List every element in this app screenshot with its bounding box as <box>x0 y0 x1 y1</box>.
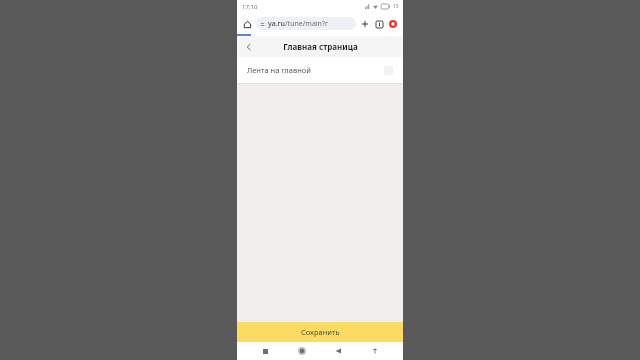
staticText: Главная страница <box>283 41 358 52</box>
button[interactable]: Tabs <box>372 17 386 31</box>
button[interactable]: Сохранить <box>237 322 403 342</box>
button[interactable]: New tab <box>358 17 372 31</box>
staticText: Сохранить <box>301 327 340 337</box>
staticText: /tune/main?r <box>285 19 328 29</box>
button[interactable]: Home <box>240 17 254 31</box>
staticText: 17:10 <box>242 3 258 11</box>
button[interactable]: Back <box>241 39 257 55</box>
button[interactable]: ya.ru <box>256 17 356 30</box>
button[interactable]: Home <box>294 343 310 359</box>
button[interactable]: Keyboard <box>367 343 383 359</box>
button[interactable]: Лента на главной <box>237 57 403 83</box>
staticText: ya.ru <box>268 19 285 29</box>
staticText: Лента на главной <box>247 65 384 75</box>
button[interactable]: Menu <box>386 17 400 31</box>
staticText: 15 <box>393 3 399 10</box>
button[interactable]: Back <box>330 343 346 359</box>
button[interactable]: Recent apps <box>257 343 273 359</box>
